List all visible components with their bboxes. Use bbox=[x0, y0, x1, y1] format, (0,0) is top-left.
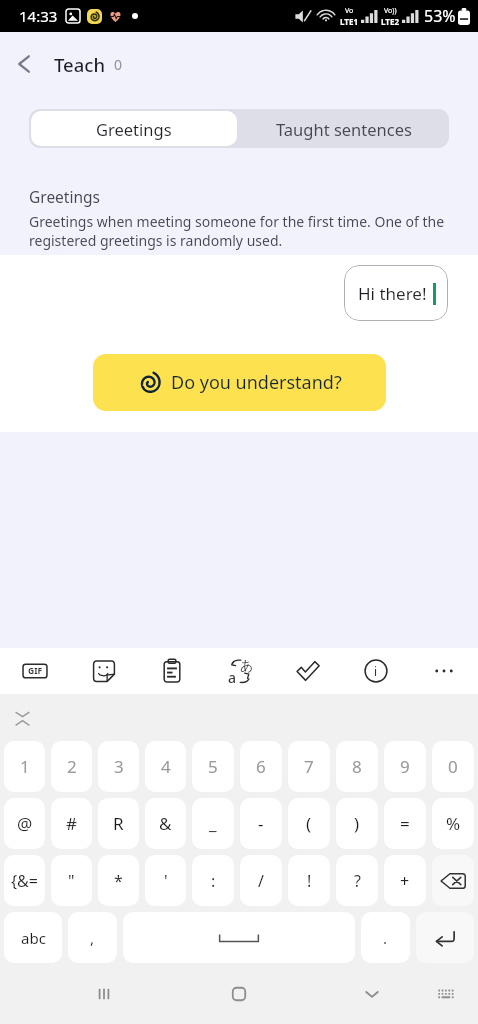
staticText: あ bbox=[240, 657, 254, 673]
staticText: 0 bbox=[114, 55, 123, 74]
staticText: 8 bbox=[352, 755, 362, 778]
button[interactable]: {&= bbox=[4, 855, 45, 906]
button[interactable]: Enter bbox=[416, 912, 474, 963]
button[interactable]: ! bbox=[288, 855, 330, 906]
staticText: ( bbox=[306, 812, 312, 835]
staticText: Teach bbox=[54, 52, 105, 77]
staticText: # bbox=[66, 812, 77, 835]
staticText: + bbox=[400, 870, 410, 892]
button[interactable]: / bbox=[240, 855, 282, 906]
button[interactable]: : bbox=[192, 855, 234, 906]
button[interactable]: Do you understand? bbox=[93, 354, 386, 411]
staticText: abc bbox=[21, 928, 46, 948]
button[interactable]: Back bbox=[0, 32, 48, 96]
staticText: 5 bbox=[208, 755, 218, 778]
staticText: 4 bbox=[161, 755, 171, 778]
button[interactable]: abc bbox=[4, 912, 62, 963]
staticText: ? bbox=[354, 870, 361, 892]
staticText: - bbox=[258, 812, 264, 835]
button[interactable]: , bbox=[68, 912, 117, 963]
button[interactable]: 0 bbox=[432, 741, 474, 792]
button[interactable]: ) bbox=[336, 798, 378, 849]
staticText: Vo bbox=[345, 6, 354, 16]
staticText: , bbox=[90, 928, 95, 948]
button[interactable]: R bbox=[98, 798, 139, 849]
button[interactable]: 9 bbox=[384, 741, 426, 792]
staticText: 2 bbox=[67, 755, 77, 778]
button[interactable]: Clipboard bbox=[138, 648, 206, 694]
button[interactable]: Stickers bbox=[69, 648, 138, 694]
staticText: 6 bbox=[256, 755, 266, 778]
staticText: 1 bbox=[20, 755, 30, 778]
button[interactable]: & bbox=[145, 798, 186, 849]
staticText: " bbox=[68, 870, 75, 892]
staticText: Greetings bbox=[29, 186, 100, 207]
button[interactable]: Home bbox=[215, 970, 263, 1018]
button[interactable]: * bbox=[98, 855, 139, 906]
button[interactable]: + bbox=[384, 855, 426, 906]
staticText: * bbox=[114, 870, 123, 892]
staticText: R bbox=[113, 812, 124, 835]
button[interactable]: 2 bbox=[51, 741, 92, 792]
staticText: {&= bbox=[11, 870, 38, 892]
button[interactable]: # bbox=[51, 798, 92, 849]
staticText: a bbox=[228, 668, 237, 687]
button[interactable]: Backspace bbox=[432, 855, 474, 906]
staticText: 7 bbox=[304, 755, 314, 778]
button[interactable]: ? bbox=[336, 855, 378, 906]
button[interactable]: = bbox=[384, 798, 426, 849]
staticText: _ bbox=[209, 812, 217, 835]
button[interactable]: - bbox=[240, 798, 282, 849]
staticText: i bbox=[374, 663, 378, 679]
staticText: = bbox=[400, 812, 410, 835]
button[interactable]: 8 bbox=[336, 741, 378, 792]
staticText: 53% bbox=[424, 5, 456, 27]
staticText: Taught sentences bbox=[276, 118, 412, 140]
button[interactable]: ' bbox=[145, 855, 186, 906]
staticText: / bbox=[258, 870, 264, 892]
staticText: LTE1 bbox=[340, 16, 358, 27]
button[interactable]: Hi there! bbox=[344, 265, 448, 321]
button[interactable]: Collapse toolbar bbox=[8, 704, 36, 732]
button[interactable]: Greetings bbox=[31, 111, 237, 146]
button[interactable]: Taught sentences bbox=[239, 109, 449, 148]
staticText: Do you understand? bbox=[171, 370, 342, 395]
button[interactable]: 1 bbox=[4, 741, 45, 792]
staticText: 0 bbox=[448, 755, 458, 778]
button[interactable]: @ bbox=[4, 798, 45, 849]
button[interactable]: 4 bbox=[145, 741, 186, 792]
staticText: 14:33 bbox=[19, 6, 58, 26]
staticText: Greetings when meeting someone for the f… bbox=[29, 212, 454, 250]
staticText: 3 bbox=[114, 755, 124, 778]
button[interactable]: ( bbox=[288, 798, 330, 849]
staticText: 9 bbox=[400, 755, 410, 778]
staticText: Greetings bbox=[96, 118, 172, 140]
button[interactable]: % bbox=[432, 798, 474, 849]
button[interactable]: GIF bbox=[0, 648, 69, 694]
button[interactable]: More options bbox=[410, 648, 478, 694]
button[interactable]: 6 bbox=[240, 741, 282, 792]
button[interactable]: 5 bbox=[192, 741, 234, 792]
button[interactable]: Hide keyboard bbox=[348, 970, 396, 1018]
staticText: ' bbox=[164, 870, 168, 892]
staticText: LTE2 bbox=[381, 16, 399, 27]
button[interactable]: 3 bbox=[98, 741, 139, 792]
button[interactable]: Translate bbox=[206, 648, 274, 694]
staticText: Hi there! bbox=[358, 282, 427, 305]
staticText: GIF bbox=[28, 665, 43, 677]
button[interactable]: " bbox=[51, 855, 92, 906]
button[interactable]: Switch keyboard bbox=[421, 970, 469, 1018]
button[interactable]: Spell check bbox=[274, 648, 342, 694]
staticText: % bbox=[446, 812, 461, 835]
button[interactable]: Recent apps bbox=[80, 970, 128, 1018]
staticText: . bbox=[383, 928, 388, 948]
button[interactable]: Info bbox=[342, 648, 410, 694]
button[interactable]: Space bbox=[123, 912, 355, 963]
staticText: Vo)) bbox=[384, 6, 397, 16]
staticText: ) bbox=[354, 812, 360, 835]
staticText: @ bbox=[17, 812, 33, 835]
button[interactable]: . bbox=[361, 912, 410, 963]
staticText: ! bbox=[307, 870, 312, 892]
button[interactable]: _ bbox=[192, 798, 234, 849]
button[interactable]: 7 bbox=[288, 741, 330, 792]
